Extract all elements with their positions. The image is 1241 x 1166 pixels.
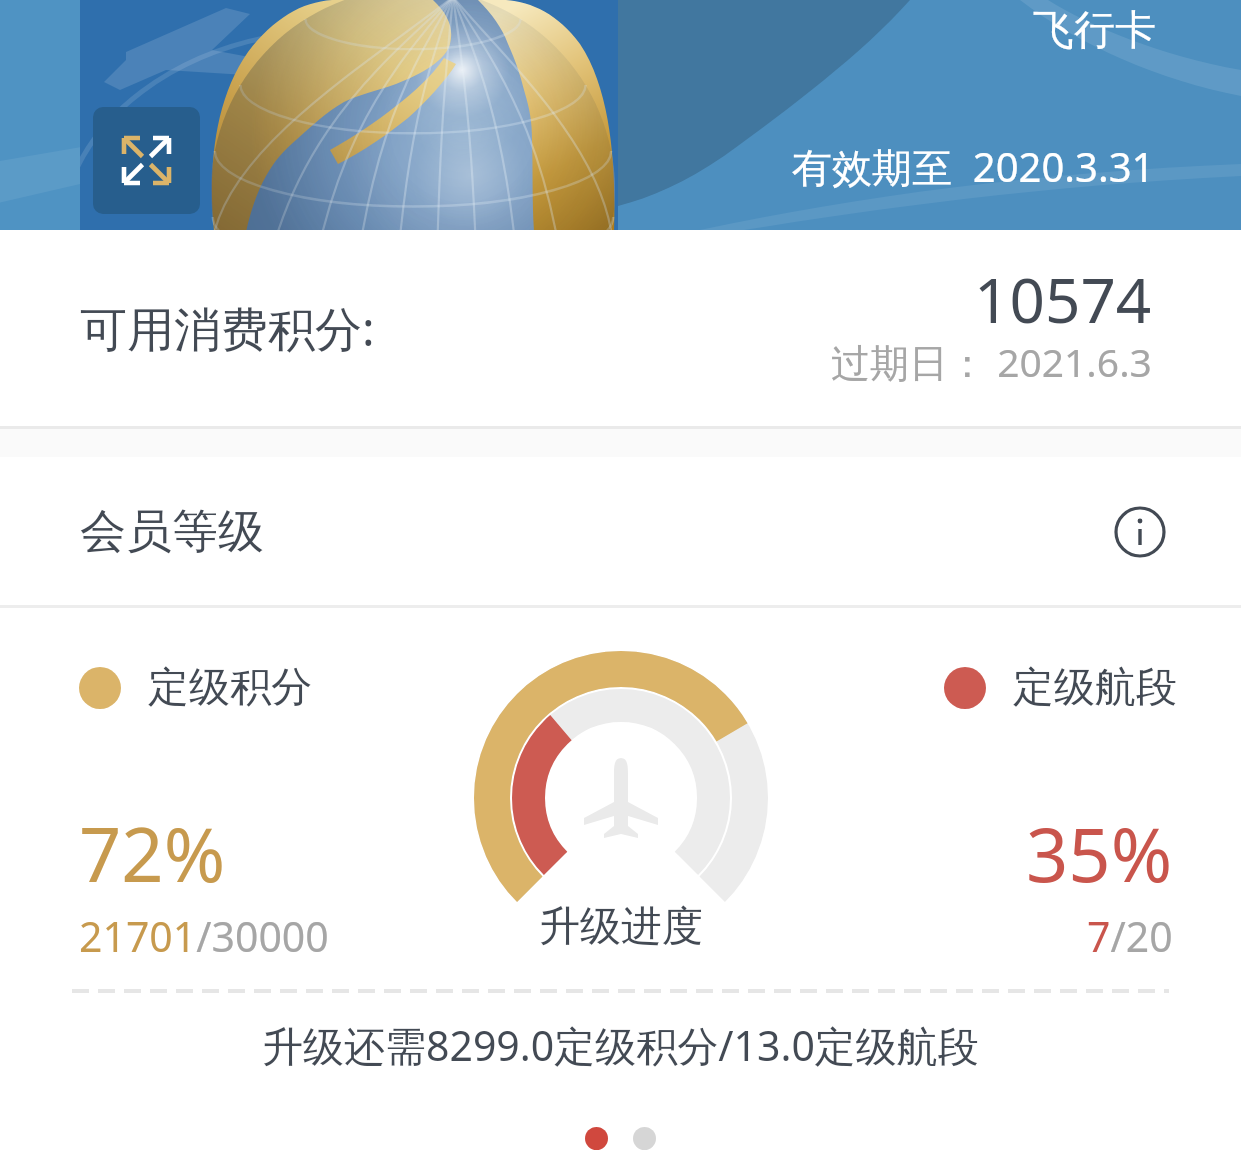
staticText: 定级积分 [148,662,312,714]
staticText: 会员等级 [80,503,264,561]
staticText: 升级还需8299.0定级积分/13.0定级航段 [262,1017,979,1073]
staticText: 过期日： 2021.6.3 [831,335,1152,388]
button[interactable]: Expand card [93,107,200,214]
staticText: 10574 [974,257,1152,341]
staticText: 21701/30000 [79,908,329,964]
staticText: 可用消费积分: [80,296,375,360]
button[interactable]: Info [1110,502,1170,562]
staticText: 有效期至 2020.3.31 [792,139,1155,194]
staticText: 7/20 [1087,908,1173,964]
staticText: 72% [79,803,226,904]
staticText: 升级进度 [539,901,703,953]
staticText: 飞行卡 [1033,5,1156,57]
staticText: 定级航段 [1013,662,1177,714]
staticText: 35% [1026,803,1173,904]
